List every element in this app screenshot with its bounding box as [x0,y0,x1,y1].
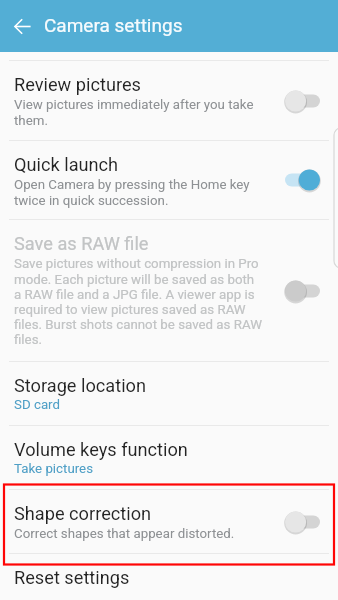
staticText: Save pictures without compression in Pro… [14,256,264,348]
staticText: Shape correction [14,503,152,524]
button[interactable]: Shape correction [0,490,338,553]
button[interactable]: Reset settings [0,554,338,600]
staticText: Camera settings [44,14,183,36]
button[interactable]: Back [0,0,44,52]
button[interactable]: Volume keys function [0,426,338,489]
staticText: Reset settings [14,567,130,588]
staticText: Take pictures [14,461,94,477]
staticText: SD card [14,397,60,413]
staticText: Save as RAW file [14,233,149,254]
staticText: Quick launch [14,154,119,175]
button[interactable]: Save as RAW file [0,220,338,361]
button[interactable]: Quick launch [0,141,338,219]
staticText: Correct shapes that appear distorted. [14,526,235,542]
staticText: Storage location [14,375,147,396]
button[interactable]: Review pictures [0,61,338,140]
staticText: View pictures immediately after you take… [14,97,264,129]
staticText: Open Camera by pressing the Home key twi… [14,177,264,209]
button[interactable]: Storage location [0,362,338,425]
staticText: Volume keys function [14,439,188,460]
staticText: Review pictures [14,74,141,95]
